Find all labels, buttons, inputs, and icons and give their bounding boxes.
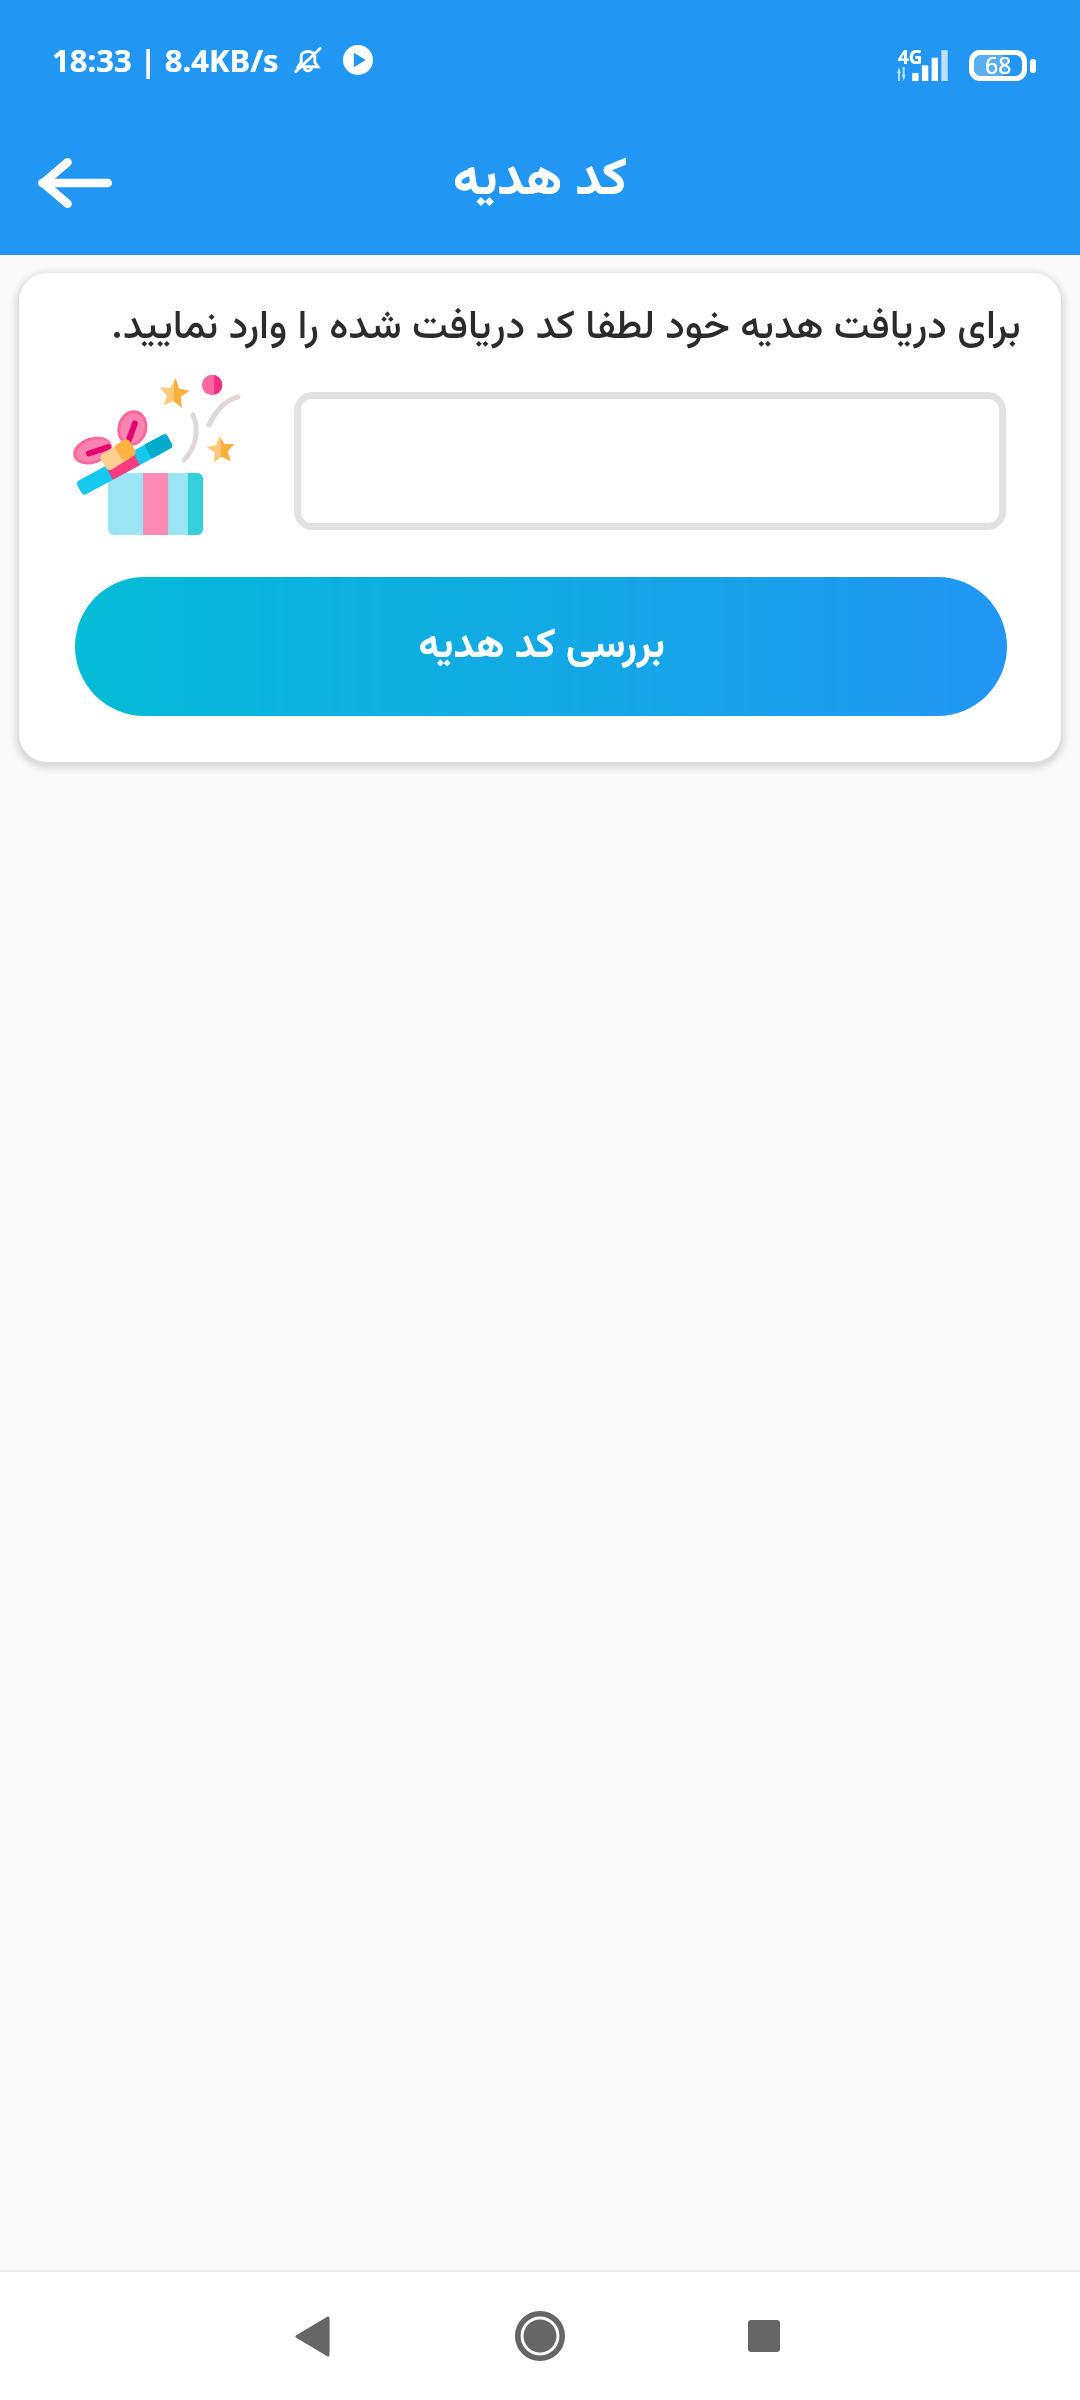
button[interactable]: Home [480,2276,600,2396]
button[interactable]: Back [10,118,140,248]
button[interactable] [294,392,1006,530]
button[interactable]: Back [252,2276,372,2396]
staticText: بررسی کد هدیه [418,615,665,679]
staticText: کد هدیه [453,141,628,222]
staticText: 18:33 | 8.4KB/s [52,39,279,81]
staticText: 68 [985,49,1012,80]
button[interactable]: Recents [704,2276,824,2396]
staticText: 4G [898,44,923,70]
button[interactable]: بررسی کد هدیه [75,577,1007,716]
staticText: برای دریافت هدیه خود لطفا کد دریافت شده … [59,297,1061,360]
